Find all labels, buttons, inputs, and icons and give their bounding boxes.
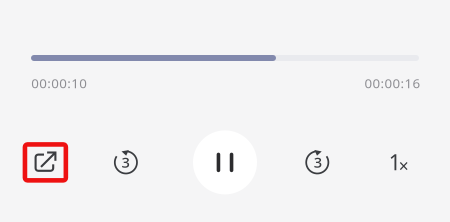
staticText: 3 [314,152,322,172]
button[interactable]: Skip forward 3 seconds [302,147,332,177]
button[interactable]: Pause [193,130,257,194]
staticText: 00:00:10 [31,74,87,92]
button[interactable]: Share [23,142,68,183]
staticText: 1 [389,148,401,176]
staticText: 00:00:16 [364,74,420,92]
button[interactable]: Skip back 3 seconds [111,147,141,177]
staticText: × [399,154,409,177]
button[interactable]: Playback speed 1x [379,145,419,179]
staticText: 3 [121,152,129,172]
